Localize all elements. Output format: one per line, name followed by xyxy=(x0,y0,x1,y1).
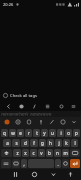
button[interactable]: d xyxy=(21,139,29,147)
button[interactable]: Emoji xyxy=(12,159,20,168)
staticText: b xyxy=(48,150,51,156)
button[interactable]: o xyxy=(65,129,72,137)
staticText: . xyxy=(57,161,59,167)
staticText: , xyxy=(23,161,25,167)
button[interactable]: z xyxy=(13,149,21,157)
button[interactable]: q xyxy=(1,129,8,137)
button[interactable]: Symbols xyxy=(1,159,11,168)
button[interactable]: b xyxy=(46,149,53,157)
staticText: 20:26 xyxy=(3,2,14,7)
staticText: d xyxy=(24,140,27,146)
button[interactable]: More xyxy=(70,118,78,126)
staticText: c xyxy=(32,150,35,156)
staticText: v xyxy=(40,150,43,156)
staticText: u xyxy=(51,130,54,136)
button[interactable]: k xyxy=(63,139,70,147)
button[interactable]: s xyxy=(12,139,20,147)
button[interactable]: , xyxy=(21,159,27,168)
button[interactable]: t xyxy=(33,129,40,137)
staticText: f xyxy=(33,140,35,146)
button[interactable]: . xyxy=(55,159,61,168)
button[interactable]: i xyxy=(57,129,64,137)
staticText: r xyxy=(28,130,30,136)
button[interactable]: Home xyxy=(29,169,40,180)
staticText: i xyxy=(60,130,62,136)
button[interactable]: List xyxy=(43,102,51,110)
button[interactable]: Shift xyxy=(1,149,12,157)
button[interactable]: n xyxy=(54,149,61,157)
button[interactable]: Enter xyxy=(70,159,80,168)
staticText: o xyxy=(67,130,70,136)
button[interactable]: h xyxy=(47,139,54,147)
button[interactable]: c xyxy=(30,149,37,157)
button[interactable]: f xyxy=(30,139,38,147)
button[interactable]: p xyxy=(73,129,80,137)
staticText: n xyxy=(56,150,59,156)
staticText: t xyxy=(36,130,38,136)
button[interactable]: Voice xyxy=(37,118,45,126)
staticText: g xyxy=(41,140,44,146)
staticText: z xyxy=(16,150,19,156)
staticText: Check all tags xyxy=(10,93,37,99)
button[interactable]: Emoji xyxy=(3,118,11,126)
staticText: s xyxy=(15,140,18,146)
button[interactable]: w xyxy=(9,129,16,137)
button[interactable]: l xyxy=(71,139,78,147)
button[interactable]: Keyboard switcher xyxy=(65,169,76,180)
staticText: yyyyy.yyyy.yyy/yyyyy/y yyyyyyyyy.yyy.yyy xyxy=(0,112,54,116)
staticText: j xyxy=(58,140,60,146)
staticText: h xyxy=(49,140,52,146)
staticText: m xyxy=(63,150,68,156)
button[interactable]: e xyxy=(17,129,24,137)
button[interactable]: Undo xyxy=(4,102,12,110)
button[interactable]: Bold xyxy=(17,102,25,110)
staticText: a xyxy=(6,140,9,146)
button[interactable]: Handwriting xyxy=(48,118,56,126)
button[interactable]: y xyxy=(41,129,48,137)
staticText: y xyxy=(43,130,46,136)
button[interactable]: More xyxy=(69,102,77,110)
button[interactable]: j xyxy=(55,139,62,147)
button[interactable]: Translate xyxy=(59,118,67,126)
button[interactable]: v xyxy=(38,149,45,157)
button[interactable]: Settings xyxy=(62,159,69,168)
button[interactable]: m xyxy=(62,149,69,157)
staticText: x xyxy=(24,150,27,156)
staticText: p xyxy=(75,130,78,136)
staticText: k xyxy=(65,140,68,146)
staticText: w xyxy=(11,130,15,136)
button[interactable]: Italic xyxy=(30,102,38,110)
button[interactable]: Settings xyxy=(14,118,22,126)
button[interactable]: a xyxy=(3,139,11,147)
staticText: l xyxy=(74,140,76,146)
button[interactable]: r xyxy=(25,129,32,137)
button[interactable]: Hide keyboard xyxy=(48,169,59,180)
button[interactable]: Clipboard xyxy=(25,118,33,126)
staticText: q xyxy=(3,130,6,136)
button[interactable]: Attach xyxy=(57,102,65,110)
button[interactable]: u xyxy=(49,129,56,137)
button[interactable]: Backspace xyxy=(70,149,80,157)
button[interactable]: Recents xyxy=(10,169,21,180)
button[interactable]: g xyxy=(39,139,46,147)
staticText: e xyxy=(19,130,22,136)
button[interactable]: x xyxy=(22,149,29,157)
